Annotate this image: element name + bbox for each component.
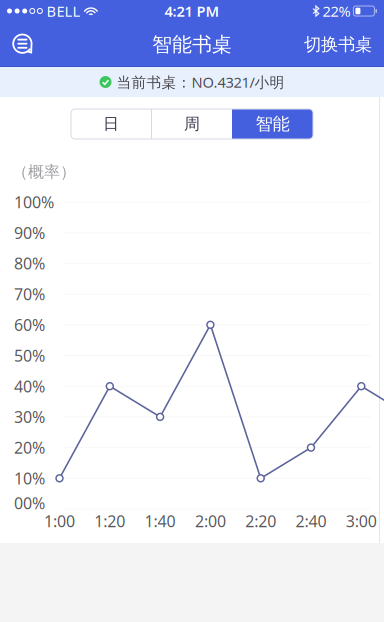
button[interactable]: 周	[152, 109, 232, 139]
staticText: （概率）	[12, 162, 76, 182]
staticText: 22%	[322, 1, 350, 21]
staticText: 智能书桌	[152, 32, 232, 57]
staticText: 30%	[14, 406, 45, 427]
staticText: 智能	[255, 113, 289, 135]
staticText: 80%	[14, 253, 45, 274]
staticText: BELL	[46, 1, 80, 21]
staticText: 00%	[14, 492, 45, 514]
staticText: 90%	[14, 222, 45, 243]
staticText: 20%	[14, 437, 45, 458]
staticText: 100%	[14, 191, 54, 213]
staticText: 2:40	[295, 510, 326, 532]
staticText: 1:00	[44, 510, 75, 532]
staticText: 当前书桌：NO.4321/小明	[116, 72, 284, 92]
staticText: 40%	[14, 376, 45, 397]
button[interactable]: 消息	[0, 22, 46, 66]
staticText: 60%	[14, 314, 45, 335]
button[interactable]: 智能	[232, 109, 313, 139]
button[interactable]: 切换书桌	[292, 22, 384, 66]
staticText: 4:21 PM	[164, 1, 219, 21]
staticText: 切换书桌	[304, 34, 372, 55]
button[interactable]: 日	[71, 109, 151, 139]
staticText: 10%	[14, 468, 45, 489]
staticText: 70%	[14, 283, 45, 305]
staticText: 2:00	[195, 510, 226, 532]
staticText: 3:00	[346, 510, 377, 532]
staticText: 1:40	[145, 510, 176, 532]
staticText: 周	[184, 114, 200, 134]
staticText: 1:20	[94, 510, 125, 532]
staticText: 日	[103, 114, 119, 134]
staticText: 50%	[14, 345, 45, 366]
staticText: 2:20	[245, 510, 276, 532]
